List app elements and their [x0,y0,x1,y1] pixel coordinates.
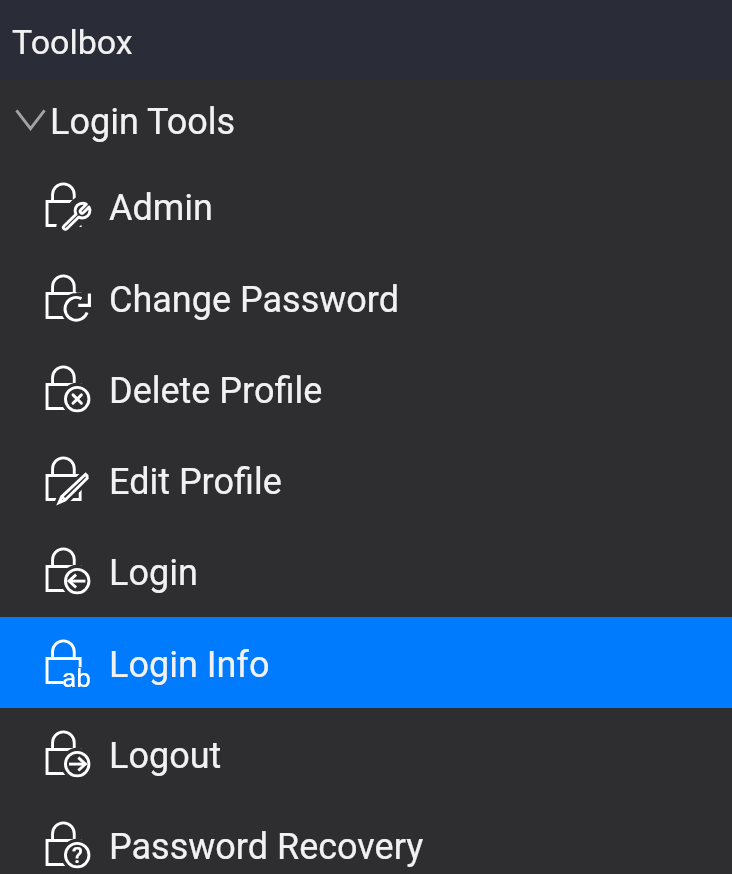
staticText: Edit Profile [109,461,282,503]
button[interactable]: Delete Profile [0,343,732,434]
staticText: Toolbox [12,22,133,62]
staticText: Logout [109,735,222,777]
button[interactable]: Login [0,525,732,616]
staticText: ab [62,663,91,693]
button[interactable]: Edit Profile [0,434,732,525]
button[interactable]: Collapse Login Tools [0,80,732,160]
staticText: Change Password [109,279,399,321]
other: Collapse Login Tools [15,109,46,130]
staticText: Admin [109,187,213,229]
button[interactable]: Admin [0,160,732,251]
staticText: Password Recovery [109,826,424,868]
button[interactable]: Logout [0,708,732,799]
staticText: Delete Profile [109,370,323,412]
button[interactable]: ? [0,799,732,874]
button[interactable]: ab [0,617,732,708]
button[interactable]: Change Password [0,252,732,343]
staticText: Login Tools [50,101,236,143]
staticText: Login [109,552,198,594]
staticText: Login Info [109,644,270,686]
staticText: ? [72,843,83,869]
